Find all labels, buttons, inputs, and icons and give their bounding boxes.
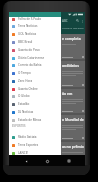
button[interactable]: Diário Catarinense bbox=[9, 54, 61, 62]
staticText: O Tempo bbox=[18, 71, 31, 75]
staticText: ão em bbox=[62, 91, 73, 96]
button[interactable]: O Globo bbox=[9, 92, 61, 100]
button[interactable]: Recent apps bbox=[64, 156, 74, 166]
staticText: Correio da Bahia bbox=[18, 63, 42, 67]
staticText: Estado de Minas bbox=[18, 118, 42, 122]
button[interactable]: Correio da Bahia bbox=[9, 61, 61, 69]
staticText: andidatos bbox=[62, 63, 79, 68]
staticText: ÚLTIMAS NOTÍCIAS bbox=[62, 26, 84, 29]
button[interactable]: e completa bbox=[61, 34, 85, 61]
staticText: Folha de S.Paulo bbox=[18, 17, 42, 21]
button[interactable]: Terra Notícias bbox=[9, 22, 61, 30]
staticText: e completa bbox=[62, 36, 81, 41]
staticText: LANCE! bbox=[18, 151, 29, 155]
button[interactable]: Back bbox=[21, 156, 31, 166]
button[interactable]: Zero Hora bbox=[9, 77, 61, 85]
button[interactable]: Terra Esportes bbox=[9, 141, 61, 149]
button[interactable]: UOL Notícias bbox=[9, 30, 61, 38]
button[interactable]: BBC Brasil bbox=[9, 38, 61, 46]
staticText: IG Notícias bbox=[18, 110, 34, 114]
button[interactable]: as no prêmio bbox=[61, 142, 85, 155]
staticText: O Globo bbox=[18, 94, 30, 98]
staticText: Zero Hora bbox=[18, 79, 33, 83]
staticText: Terra Esportes bbox=[18, 143, 39, 147]
button[interactable]: More options bbox=[80, 19, 84, 23]
button[interactable]: Estado de Minas bbox=[9, 116, 61, 124]
staticText: as no prêmio bbox=[62, 144, 84, 149]
staticText: Gazeta do Povo bbox=[18, 48, 40, 52]
button[interactable]: Gazeta do Povo bbox=[9, 46, 61, 54]
staticText: UOL Notícias bbox=[18, 32, 37, 36]
button[interactable]: Rádio Itatiaia bbox=[9, 133, 61, 141]
button[interactable]: Folha de S.Paulo bbox=[9, 17, 61, 23]
button[interactable]: Estadão bbox=[9, 100, 61, 108]
staticText: ABC bbox=[62, 19, 68, 23]
button[interactable]: IG Notícias bbox=[9, 108, 61, 116]
button[interactable]: ÚLTIMAS NOTÍCIAS bbox=[61, 24, 85, 34]
button[interactable]: LANCE! bbox=[9, 149, 61, 155]
button[interactable]: Search bbox=[75, 18, 80, 23]
staticText: Terra Notícias bbox=[18, 24, 38, 28]
staticText: o Mundial de bbox=[62, 117, 84, 122]
staticText: Gazeta Online bbox=[18, 87, 38, 91]
button[interactable]: Home bbox=[42, 156, 52, 166]
button[interactable]: andidatos bbox=[61, 61, 85, 89]
staticText: BBC Brasil bbox=[18, 40, 33, 44]
staticText: Diário Catarinense bbox=[18, 56, 45, 60]
button[interactable]: O Tempo bbox=[9, 69, 61, 77]
button[interactable]: ão em bbox=[61, 89, 85, 115]
staticText: ESPORTES bbox=[12, 124, 26, 128]
staticText: Estadão bbox=[18, 102, 30, 106]
button[interactable]: Gazeta Online bbox=[9, 85, 61, 93]
staticText: Rádio Itatiaia bbox=[18, 135, 37, 139]
button[interactable]: o Mundial de bbox=[61, 115, 85, 142]
